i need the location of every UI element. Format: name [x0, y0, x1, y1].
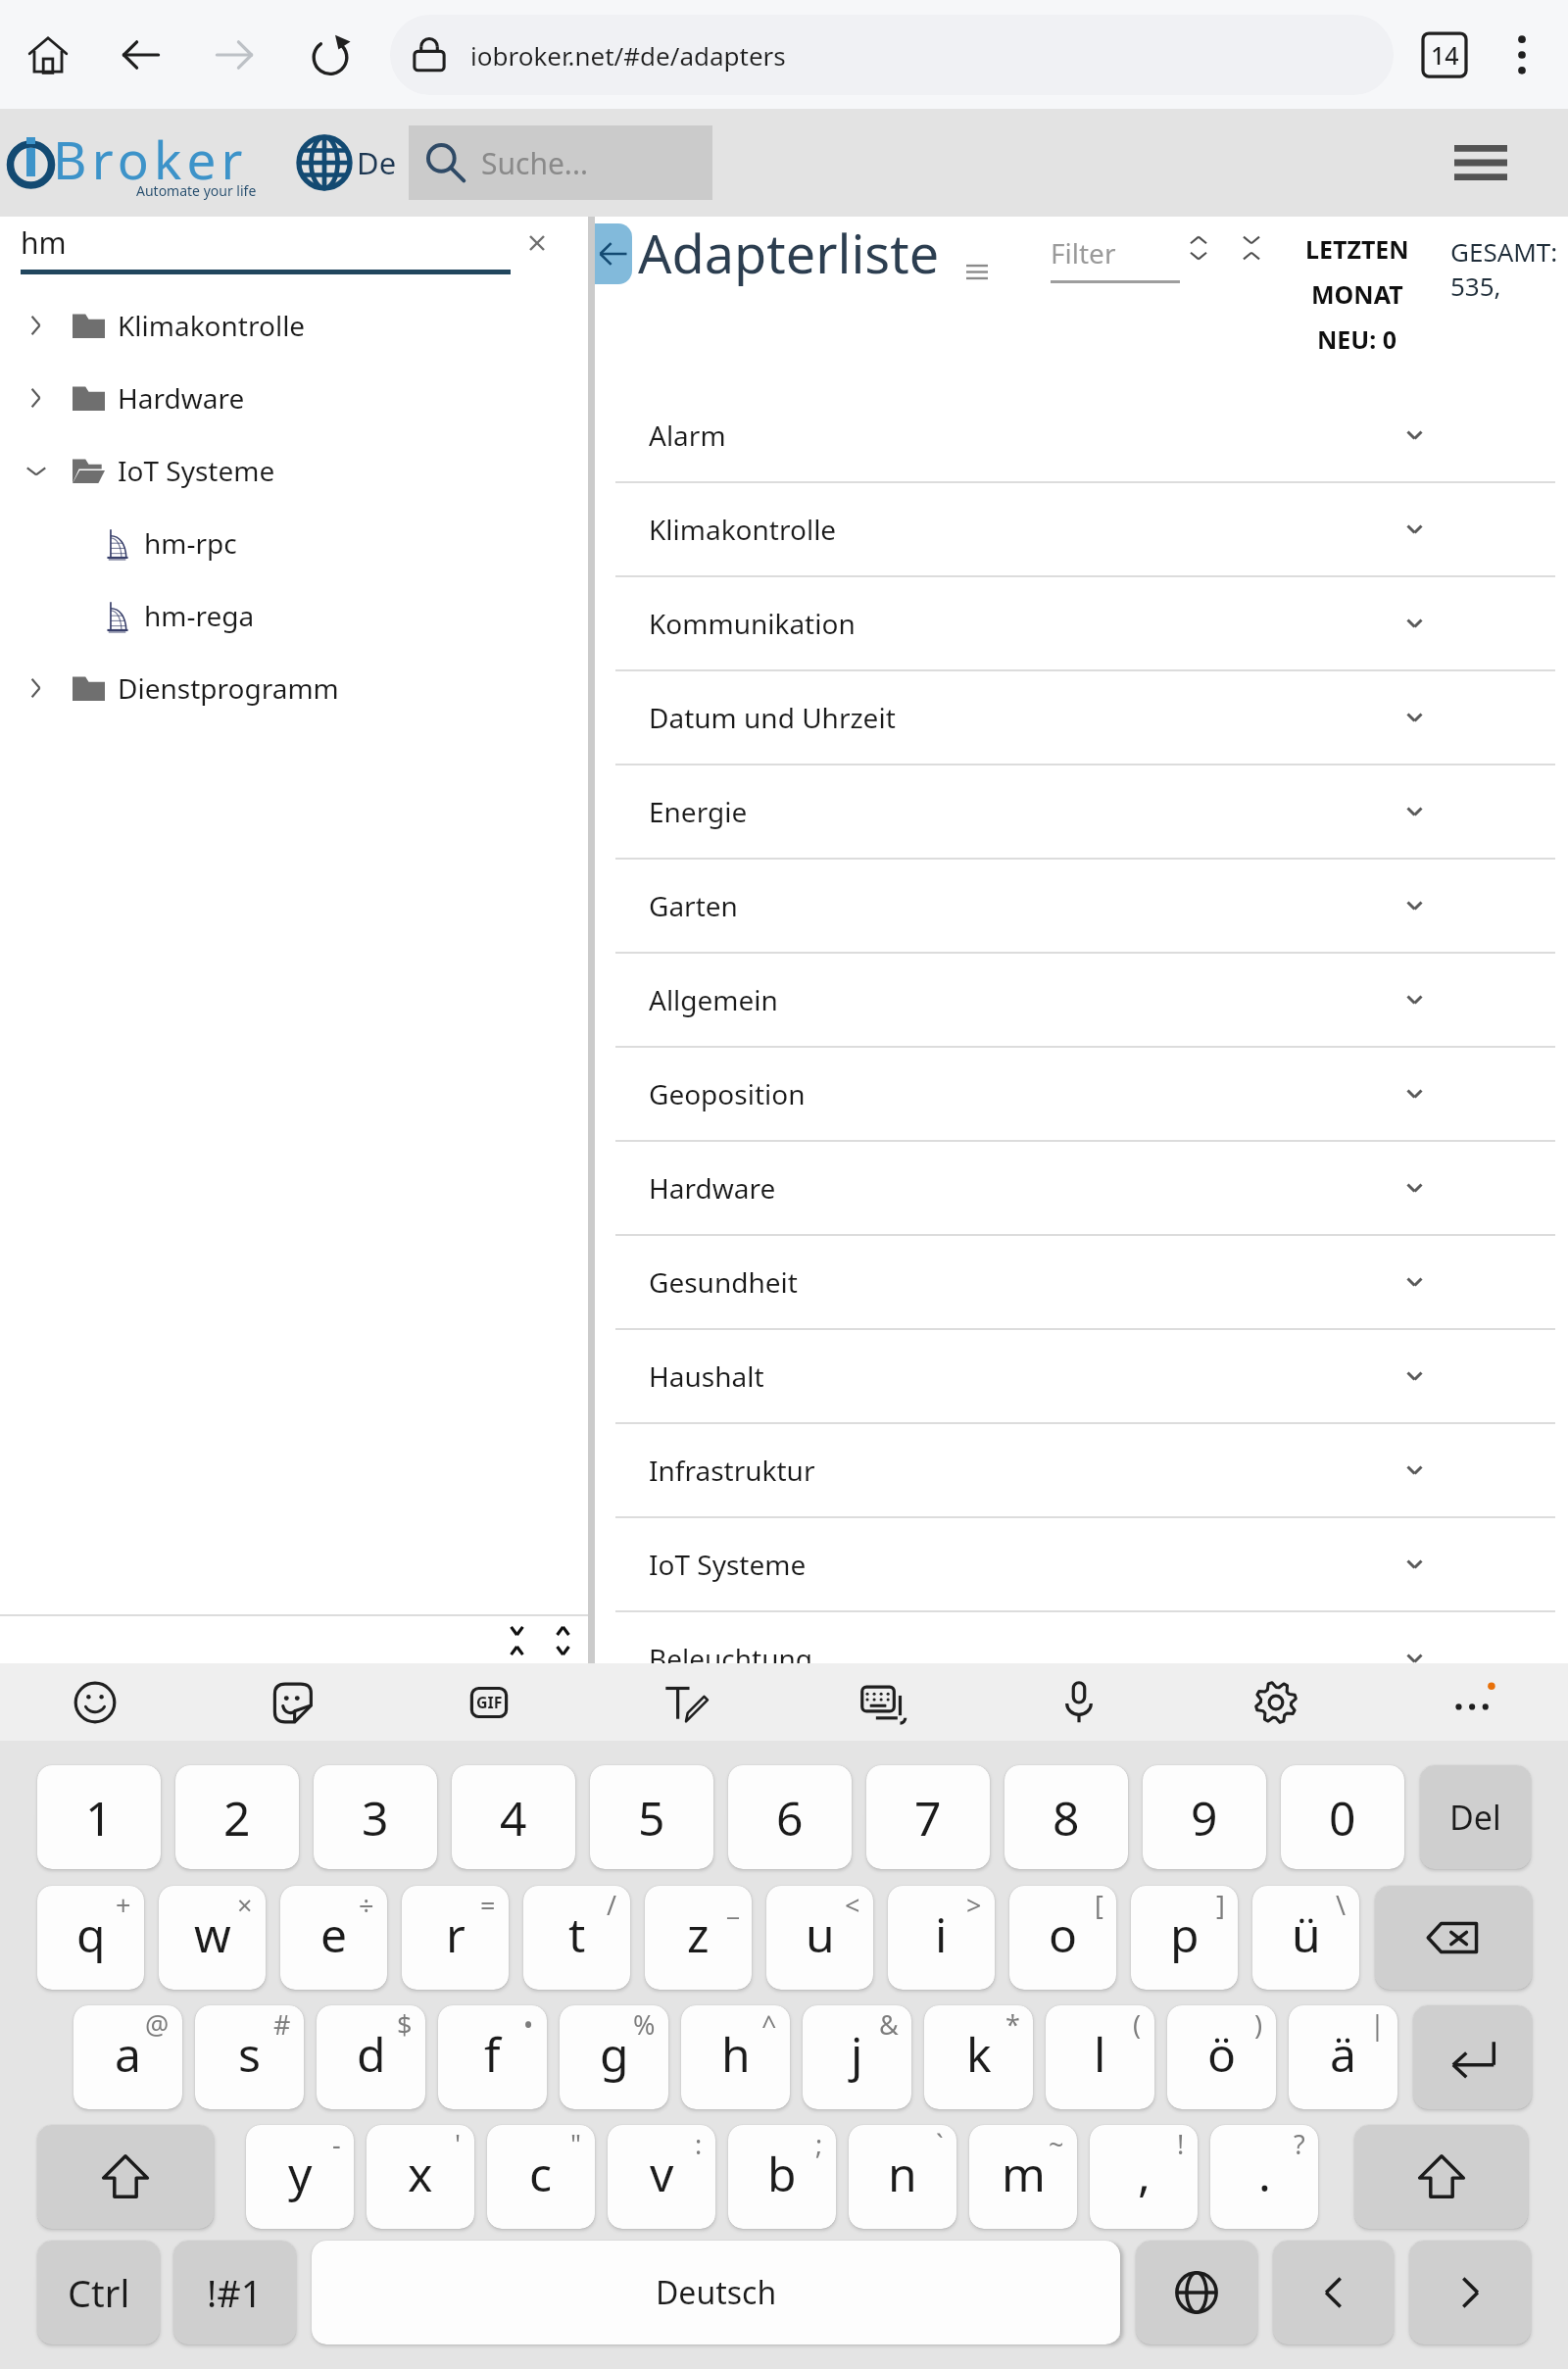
- button[interactable]: Tabs: 14: [1409, 20, 1480, 90]
- button[interactable]: 2: [175, 1765, 299, 1869]
- button[interactable]: Alarm: [595, 389, 1568, 481]
- button[interactable]: Expand all: [1179, 228, 1218, 268]
- staticText: r: [446, 1902, 465, 1966]
- button[interactable]: ]: [1131, 1886, 1238, 1990]
- button[interactable]: ^: [681, 2005, 790, 2109]
- button[interactable]: Del: [1420, 1765, 1531, 1869]
- button[interactable]: Menu: [1437, 119, 1525, 207]
- button[interactable]: kb: [850, 1670, 914, 1735]
- button[interactable]: Kommunikation: [595, 577, 1568, 669]
- button[interactable]: Allgemein: [595, 954, 1568, 1046]
- button[interactable]: ": [487, 2125, 595, 2229]
- button[interactable]: _: [645, 1886, 752, 1990]
- button[interactable]: Home: [9, 16, 87, 94]
- button[interactable]: Haushalt: [595, 1330, 1568, 1422]
- button[interactable]: iobroker.net/#de/adapters: [390, 15, 1394, 95]
- button[interactable]: !: [1090, 2125, 1198, 2229]
- button[interactable]: 4: [452, 1765, 575, 1869]
- button[interactable]: :: [608, 2125, 715, 2229]
- button[interactable]: Geoposition: [595, 1048, 1568, 1140]
- button[interactable]: settings: [1244, 1670, 1308, 1735]
- button[interactable]: backspace: [1375, 1886, 1532, 1990]
- button[interactable]: sticker: [260, 1670, 324, 1735]
- button[interactable]: Hardware: [0, 362, 588, 434]
- button[interactable]: >: [888, 1886, 995, 1990]
- button[interactable]: Energie: [595, 765, 1568, 858]
- button[interactable]: Reload: [291, 16, 369, 94]
- button[interactable]: IoT Systeme: [0, 434, 588, 507]
- button[interactable]: Back: [102, 16, 180, 94]
- button[interactable]: ~: [969, 2125, 1077, 2229]
- button[interactable]: enter: [1413, 2005, 1532, 2109]
- button[interactable]: =: [402, 1886, 509, 1990]
- button[interactable]: globe: [1136, 2241, 1257, 2344]
- button[interactable]: %: [560, 2005, 668, 2109]
- button[interactable]: Ctrl: [37, 2241, 160, 2344]
- button[interactable]: &: [803, 2005, 911, 2109]
- button[interactable]: 1: [37, 1765, 161, 1869]
- button[interactable]: -: [246, 2125, 354, 2229]
- button[interactable]: •: [438, 2005, 547, 2109]
- button[interactable]: shift: [1354, 2125, 1528, 2229]
- button[interactable]: ?: [1210, 2125, 1318, 2229]
- button[interactable]: Gesundheit: [595, 1236, 1568, 1328]
- button[interactable]: Deutsch: [312, 2241, 1120, 2344]
- button[interactable]: Clear search: [515, 222, 559, 265]
- button[interactable]: right: [1409, 2241, 1531, 2344]
- button[interactable]: hand: [654, 1670, 718, 1735]
- button[interactable]: 7: [866, 1765, 990, 1869]
- button[interactable]: !#1: [173, 2241, 296, 2344]
- button[interactable]: 9: [1143, 1765, 1266, 1869]
- button[interactable]: 6: [728, 1765, 852, 1869]
- button[interactable]: <: [766, 1886, 873, 1990]
- button[interactable]: (: [1046, 2005, 1154, 2109]
- staticText: !: [1177, 2126, 1185, 2162]
- button[interactable]: ;: [728, 2125, 836, 2229]
- button[interactable]: Klimakontrolle: [595, 483, 1568, 575]
- button[interactable]: 8: [1004, 1765, 1128, 1869]
- button[interactable]: 5: [590, 1765, 713, 1869]
- button[interactable]: Garten: [595, 860, 1568, 952]
- button[interactable]: List options: [957, 252, 997, 291]
- button[interactable]: Dienstprogramm: [0, 652, 588, 724]
- button[interactable]: /: [523, 1886, 630, 1990]
- button[interactable]: mic: [1047, 1670, 1111, 1735]
- button[interactable]: shift: [37, 2125, 214, 2229]
- button[interactable]: more: [1441, 1670, 1505, 1735]
- button[interactable]: \: [1252, 1886, 1359, 1990]
- button[interactable]: Collapse all: [494, 1617, 540, 1663]
- button[interactable]: Forward: [195, 16, 273, 94]
- button[interactable]: ÷: [280, 1886, 387, 1990]
- button[interactable]: IoT Systeme: [595, 1518, 1568, 1610]
- button[interactable]: De: [294, 132, 397, 193]
- button[interactable]: Infrastruktur: [595, 1424, 1568, 1516]
- button[interactable]: Hardware: [595, 1142, 1568, 1234]
- button[interactable]: `: [849, 2125, 956, 2229]
- button[interactable]: Collapse all: [1232, 228, 1271, 268]
- button[interactable]: Beleuchtung: [595, 1612, 1568, 1663]
- button[interactable]: Datum und Uhrzeit: [595, 671, 1568, 764]
- button[interactable]: emoji: [63, 1670, 127, 1735]
- button[interactable]: Expand all: [540, 1617, 586, 1663]
- button[interactable]: hm-rpc: [0, 507, 588, 579]
- button[interactable]: hm-rega: [0, 579, 588, 652]
- button[interactable]: More options: [1490, 23, 1554, 87]
- button[interactable]: @: [73, 2005, 182, 2109]
- button[interactable]: ×: [159, 1886, 266, 1990]
- button[interactable]: Suche...: [409, 125, 712, 200]
- button[interactable]: Klimakontrolle: [0, 289, 588, 362]
- button[interactable]: #: [195, 2005, 304, 2109]
- button[interactable]: $: [317, 2005, 425, 2109]
- button[interactable]: Back: [595, 223, 632, 284]
- button[interactable]: gif: [457, 1670, 521, 1735]
- button[interactable]: ': [367, 2125, 474, 2229]
- staticText: 7: [914, 1786, 942, 1850]
- button[interactable]: left: [1273, 2241, 1394, 2344]
- button[interactable]: 3: [314, 1765, 437, 1869]
- button[interactable]: *: [924, 2005, 1033, 2109]
- button[interactable]: ): [1167, 2005, 1276, 2109]
- button[interactable]: 0: [1281, 1765, 1404, 1869]
- button[interactable]: |: [1289, 2005, 1397, 2109]
- button[interactable]: [: [1009, 1886, 1116, 1990]
- button[interactable]: +: [37, 1886, 144, 1990]
